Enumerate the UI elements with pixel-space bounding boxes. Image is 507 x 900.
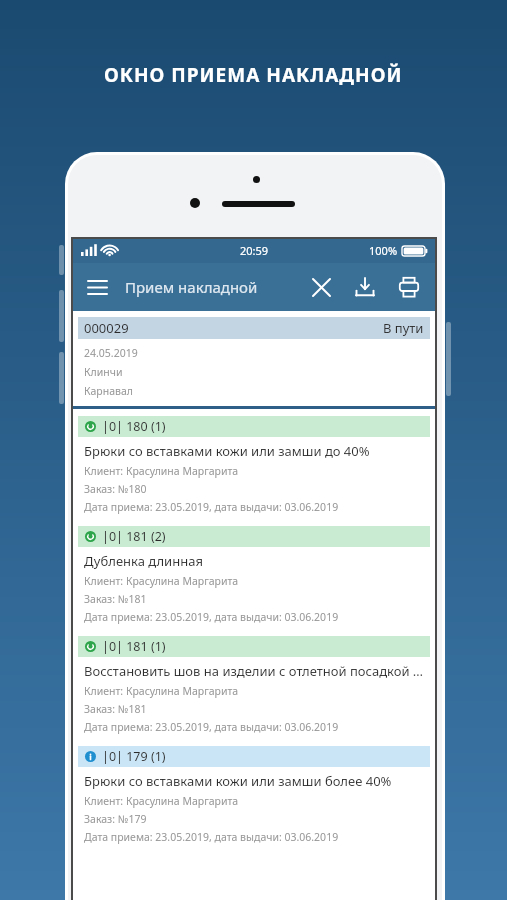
button[interactable]: |0| 181 (1) (71, 629, 437, 739)
button[interactable]: |0| 179 (1) (71, 739, 437, 849)
staticText: Клиент: Красулина Маргарита (84, 464, 239, 478)
button[interactable]: |0| 180 (1) (71, 409, 437, 519)
staticText: Заказ: №181 (84, 702, 147, 716)
staticText: Заказ: №181 (84, 592, 147, 606)
staticText: Прием накладной (125, 277, 299, 297)
staticText: Клиент: Красулина Маргарита (84, 684, 239, 698)
staticText: 24.05.2019 (84, 346, 138, 360)
staticText: 000029 (84, 319, 129, 337)
button[interactable]: Закрыть (299, 265, 343, 309)
staticText: Карнавал (84, 384, 133, 398)
staticText: Дата приема: 23.05.2019, дата выдачи: 03… (84, 610, 339, 624)
staticText: Клинчи (84, 365, 123, 379)
staticText: |0| 180 (1) (102, 418, 166, 435)
staticText: 100% (369, 243, 398, 258)
staticText: Дата приема: 23.05.2019, дата выдачи: 03… (84, 500, 339, 514)
staticText: |0| 179 (1) (102, 748, 166, 765)
staticText: Дубленка длинная (84, 552, 203, 570)
button[interactable]: |0| 181 (2) (71, 519, 437, 629)
staticText: Клиент: Красулина Маргарита (84, 794, 239, 808)
staticText: Заказ: №179 (84, 812, 147, 826)
button[interactable]: Печать (387, 265, 431, 309)
staticText: Заказ: №180 (84, 482, 147, 496)
staticText: Восстановить шов на изделии с отлетной п… (84, 662, 429, 680)
staticText: Дата приема: 23.05.2019, дата выдачи: 03… (84, 720, 339, 734)
staticText: 20:59 (240, 243, 269, 258)
staticText: Клиент: Красулина Маргарита (84, 574, 239, 588)
staticText: |0| 181 (2) (102, 528, 166, 545)
button[interactable]: Скачать (343, 265, 387, 309)
button[interactable]: 000029 (78, 317, 430, 339)
staticText: ОКНО ПРИЕМА НАКЛАДНОЙ (104, 62, 403, 88)
button[interactable]: Меню (79, 269, 115, 305)
staticText: Брюки со вставками кожи или замши до 40% (84, 442, 370, 460)
staticText: В пути (383, 319, 424, 337)
staticText: Дата приема: 23.05.2019, дата выдачи: 03… (84, 830, 339, 844)
staticText: Брюки со вставками кожи или замши более … (84, 772, 392, 790)
staticText: |0| 181 (1) (102, 638, 166, 655)
